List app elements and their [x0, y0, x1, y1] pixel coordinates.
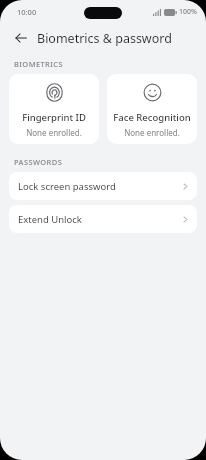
staticText: 100% [179, 7, 197, 17]
staticText: Biometrics & password [37, 30, 172, 47]
staticText: Extend Unlock [18, 213, 82, 226]
staticText: Fingerprint ID [22, 111, 86, 124]
staticText: None enrolled. [26, 127, 82, 138]
button[interactable]: Fingerprint ID [9, 74, 99, 144]
button[interactable]: Back [9, 26, 33, 50]
button[interactable]: Face Recognition [107, 74, 197, 144]
staticText: PASSWORDS [14, 157, 63, 167]
button[interactable]: Lock screen password [9, 172, 197, 200]
staticText: None enrolled. [124, 127, 180, 138]
button[interactable]: Extend Unlock [9, 205, 197, 233]
staticText: Face Recognition [113, 111, 191, 124]
staticText: 10:00 [17, 7, 37, 17]
staticText: Lock screen password [18, 180, 116, 193]
staticText: BIOMETRICS [14, 59, 63, 69]
